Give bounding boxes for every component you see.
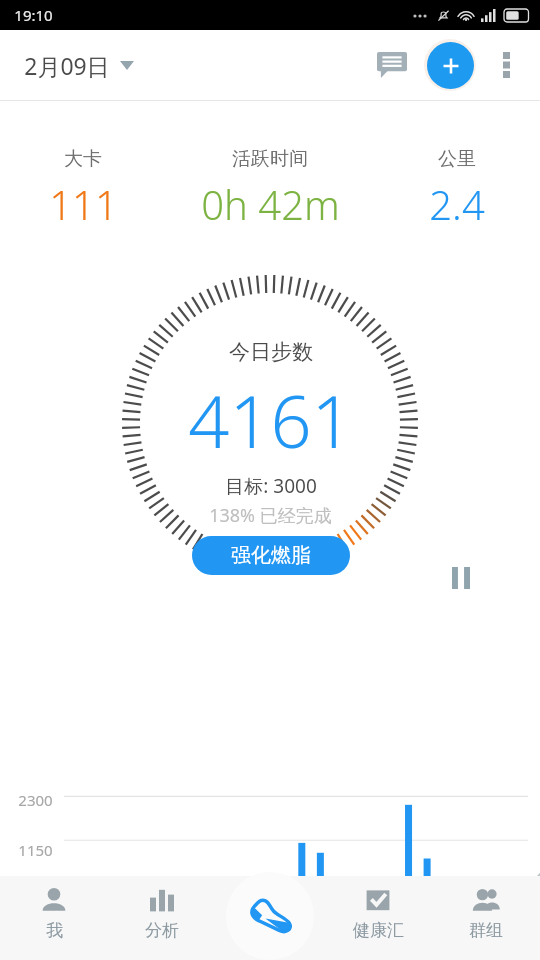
staticText: 我 [46, 920, 63, 941]
button[interactable]: 2月09日 [24, 50, 134, 81]
button[interactable]: 我 [0, 876, 108, 960]
button[interactable]: 群组 [432, 876, 540, 960]
staticText: 公里 [438, 147, 476, 171]
staticText: 19:10 [14, 5, 53, 25]
staticText: 06:00 [152, 896, 191, 916]
button[interactable]: 健康汇 [324, 876, 432, 960]
button[interactable]: Map [452, 864, 540, 952]
button[interactable]: 公里 [374, 147, 540, 231]
button[interactable]: Messages [366, 39, 418, 91]
staticText: 2300 [18, 790, 53, 810]
staticText: 0h 42m [201, 177, 340, 231]
staticText: 大卡 [64, 147, 102, 171]
staticText: 4161 [188, 371, 353, 469]
button[interactable]: 强化燃脂 [192, 536, 350, 575]
staticText: 111 [49, 177, 118, 231]
staticText: 2月09日 [24, 50, 110, 81]
button[interactable]: 大卡 [0, 147, 166, 231]
button[interactable]: 活跃时间 [166, 147, 374, 231]
staticText: 12:00 [268, 896, 307, 916]
button[interactable]: Add [420, 35, 480, 95]
staticText: 2.4 [429, 177, 485, 231]
staticText: 分析 [145, 920, 179, 941]
button[interactable]: Steps [226, 872, 314, 960]
staticText: 18:00 [380, 896, 419, 916]
staticText: 健康汇 [353, 920, 404, 941]
button[interactable]: 分析 [108, 876, 216, 960]
staticText: 1150 [18, 840, 53, 860]
staticText: 群组 [469, 920, 503, 941]
staticText: 活跃时间 [232, 147, 308, 171]
staticText: 强化燃脂 [231, 543, 311, 568]
button[interactable]: More options [480, 39, 532, 91]
button[interactable]: Pause [444, 561, 478, 595]
staticText: 目标: 3000 [225, 473, 317, 499]
staticText: 今日步数 [229, 339, 313, 365]
staticText: 138% 已经完成 [209, 503, 332, 528]
